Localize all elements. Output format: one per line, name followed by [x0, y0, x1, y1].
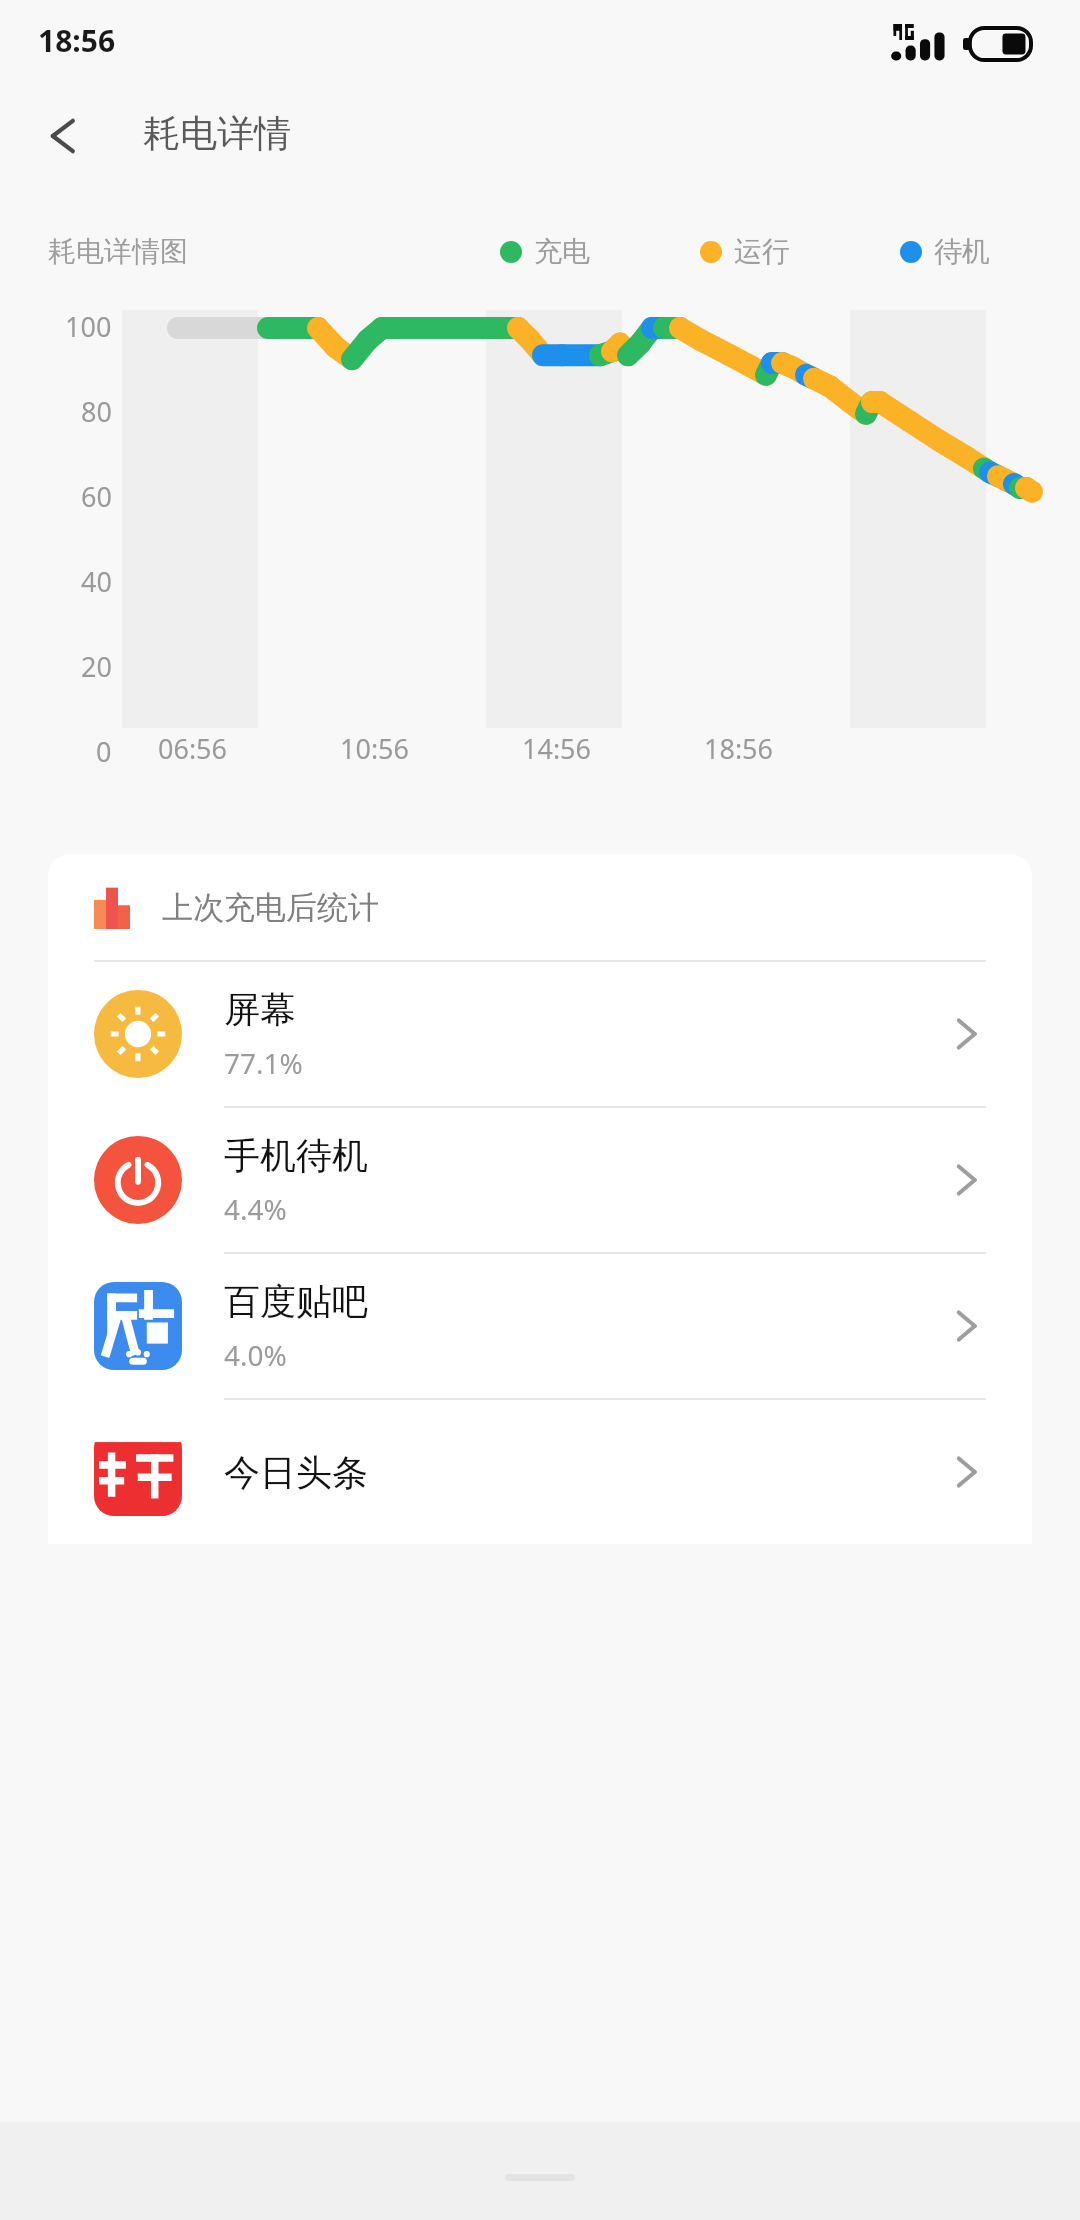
staticText: 耗电详情图 — [48, 234, 188, 269]
staticText: 10:56 — [340, 730, 410, 767]
staticText: 77.1% — [224, 1044, 303, 1082]
button[interactable]: 手机待机 — [48, 1108, 1032, 1252]
staticText: 20 — [81, 648, 112, 685]
staticText: 40 — [81, 563, 112, 600]
button[interactable]: 百度贴吧 — [48, 1254, 1032, 1398]
staticText: 18:56 — [38, 20, 116, 61]
staticText: 60 — [81, 478, 112, 515]
button[interactable]: Back — [24, 92, 112, 180]
staticText: 18:56 — [704, 730, 774, 767]
staticText: 上次充电后统计 — [162, 888, 379, 927]
staticText: 100 — [65, 308, 112, 345]
button[interactable]: 屏幕 — [48, 962, 1032, 1106]
button[interactable]: 运行 — [700, 234, 790, 269]
staticText: 运行 — [734, 234, 790, 269]
staticText: 充电 — [534, 234, 590, 269]
staticText: 4.4% — [224, 1190, 287, 1228]
staticText: 80 — [81, 393, 112, 430]
staticText: 14:56 — [522, 730, 592, 767]
staticText: 屏幕 — [224, 987, 296, 1032]
staticText: 0 — [96, 733, 112, 770]
staticText: 手机待机 — [224, 1133, 368, 1178]
staticText: 今日头条 — [224, 1450, 368, 1495]
staticText: 待机 — [934, 234, 990, 269]
button[interactable]: 今日头条 — [48, 1400, 1032, 1544]
staticText: 耗电详情 — [143, 110, 291, 157]
button[interactable]: 待机 — [900, 234, 990, 269]
button[interactable]: 充电 — [500, 234, 590, 269]
staticText: 百度贴吧 — [224, 1279, 368, 1324]
staticText: 4.0% — [224, 1336, 287, 1374]
staticText: 06:56 — [158, 730, 228, 767]
